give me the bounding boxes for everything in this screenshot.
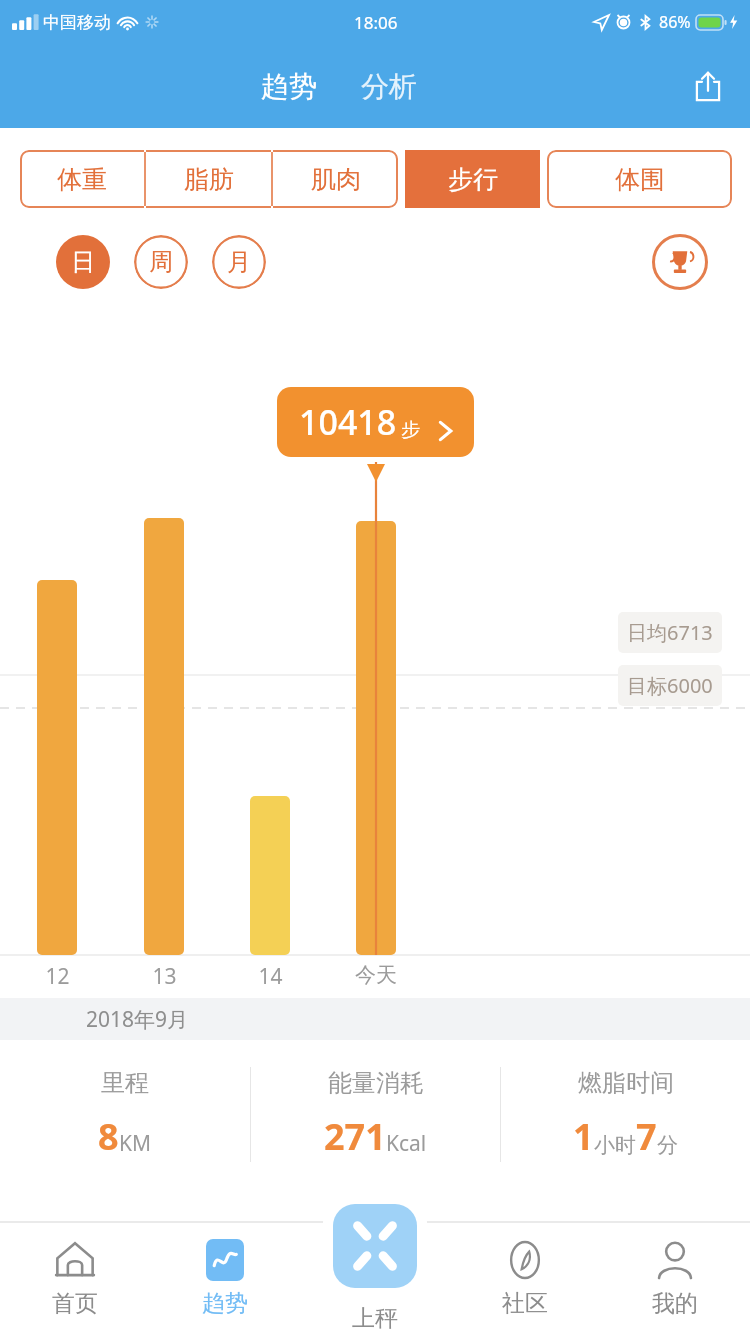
staticText: 月 (227, 247, 251, 277)
staticText: 分 (657, 1132, 678, 1158)
button[interactable]: 月 (212, 235, 266, 289)
staticText: 趋势 (261, 69, 317, 104)
staticText: 趋势 (202, 1289, 248, 1318)
staticText: 10418 (299, 399, 397, 445)
button[interactable]: Achievements (652, 234, 708, 290)
button[interactable]: 趋势 (255, 63, 323, 110)
button[interactable]: 里程 (0, 1040, 250, 1188)
staticText: 体围 (615, 164, 665, 195)
staticText: 271 (324, 1112, 386, 1161)
staticText: 14 (258, 962, 283, 991)
staticText: 分析 (361, 69, 417, 104)
button[interactable]: 能量消耗 (251, 1040, 500, 1188)
staticText: 肌肉 (311, 164, 361, 195)
staticText: 目标6000 (627, 672, 713, 699)
staticText: 上秤 (352, 1304, 398, 1333)
staticText: 首页 (52, 1289, 98, 1318)
button[interactable]: 分析 (355, 63, 423, 110)
staticText: 能量消耗 (328, 1068, 424, 1098)
button[interactable]: 趋势 (150, 1222, 300, 1334)
button[interactable]: 周 (134, 235, 188, 289)
button[interactable]: 我的 (600, 1222, 750, 1334)
staticText: 社区 (502, 1289, 548, 1318)
button[interactable]: 步行 (405, 150, 540, 208)
staticText: 12 (45, 962, 70, 991)
button[interactable]: 体围 (547, 150, 732, 208)
staticText: Kcal (386, 1129, 427, 1158)
staticText: 步 (401, 418, 420, 442)
staticText: 1 (573, 1112, 594, 1161)
button[interactable]: 10418 (277, 387, 474, 457)
staticText: 日均6713 (627, 619, 713, 646)
staticText: 里程 (101, 1068, 149, 1098)
staticText: 13 (152, 962, 177, 991)
button[interactable]: 上秤 (300, 1190, 450, 1333)
staticText: 日 (71, 247, 95, 277)
staticText: KM (119, 1129, 152, 1158)
button[interactable]: 燃脂时间 (501, 1040, 750, 1188)
button[interactable]: 首页 (0, 1222, 150, 1334)
button[interactable]: 日 (56, 235, 110, 289)
staticText: 今天 (355, 962, 397, 988)
button[interactable]: 社区 (450, 1222, 600, 1334)
staticText: 7 (636, 1112, 657, 1161)
staticText: 8 (98, 1112, 119, 1161)
button[interactable]: 体重 (20, 150, 144, 208)
staticText: 中国移动 (43, 12, 111, 33)
staticText: 步行 (448, 164, 498, 195)
staticText: 燃脂时间 (578, 1068, 674, 1098)
staticText: 我的 (652, 1289, 698, 1318)
staticText: 2018年9月 (86, 1005, 189, 1034)
staticText: 周 (149, 247, 173, 277)
staticText: 体重 (57, 164, 107, 195)
button[interactable]: Share (686, 64, 730, 108)
button[interactable]: 脂肪 (146, 150, 271, 208)
button[interactable]: 肌肉 (273, 150, 398, 208)
staticText: 脂肪 (184, 164, 234, 195)
staticText: 小时 (594, 1132, 636, 1158)
staticText: 86% (659, 11, 691, 33)
staticText: 18:06 (354, 11, 398, 34)
